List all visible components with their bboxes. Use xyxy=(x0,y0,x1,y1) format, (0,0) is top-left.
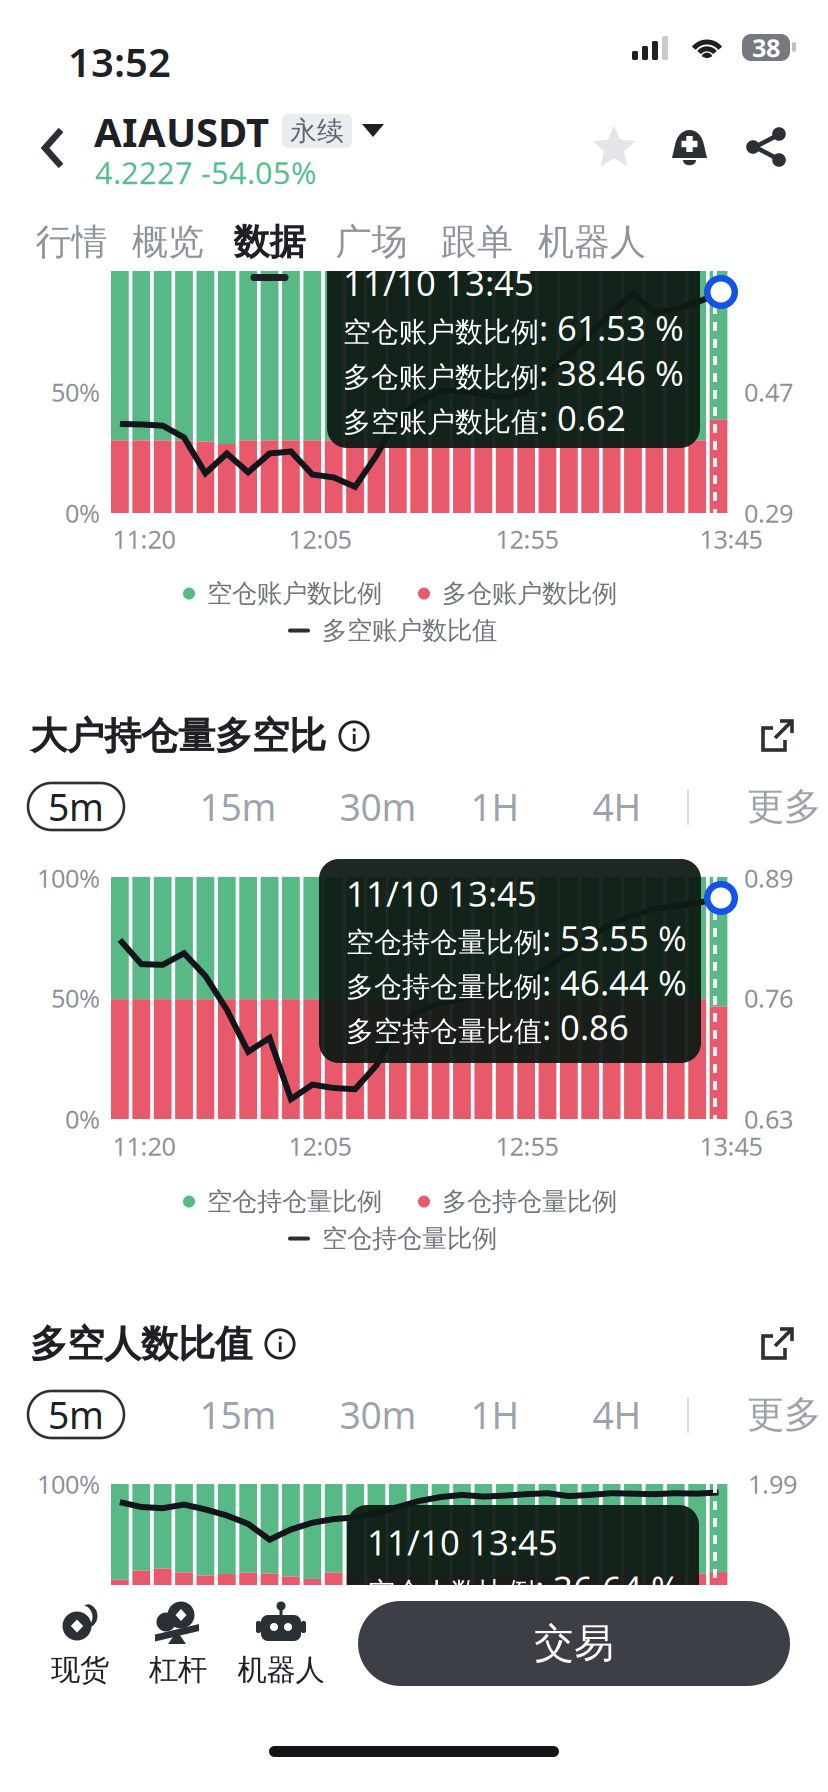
staticText: 15m xyxy=(199,1390,276,1439)
button[interactable]: Open full chart xyxy=(754,713,800,759)
staticText: 11/10 13:45 xyxy=(346,870,537,916)
button[interactable]: 5m xyxy=(28,1391,124,1438)
button[interactable]: 数据 xyxy=(218,209,321,275)
button[interactable]: 更多 xyxy=(740,783,828,830)
staticText: 现货 xyxy=(51,1652,109,1688)
staticText: 永续 xyxy=(290,115,344,147)
staticText: AIAUSDT xyxy=(94,105,269,158)
staticText: 机器人 xyxy=(237,1652,324,1688)
staticText: 12:55 xyxy=(495,522,558,556)
button[interactable]: 15m xyxy=(188,783,288,830)
staticText: 行情 xyxy=(35,220,107,264)
button[interactable]: 机器人 xyxy=(226,1600,336,1688)
staticText: 13:52 xyxy=(68,35,171,88)
button[interactable]: 4H xyxy=(578,783,656,830)
button[interactable]: Price alert xyxy=(667,124,713,170)
staticText: 0% xyxy=(65,1102,100,1136)
staticText: 机器人 xyxy=(538,220,646,264)
staticText: 1H xyxy=(470,782,519,831)
staticText: 0% xyxy=(65,496,100,530)
staticText: 1H xyxy=(470,1390,519,1439)
staticText: 多空人数比值 xyxy=(30,1321,252,1367)
staticText: 12:05 xyxy=(288,522,351,556)
button[interactable]: 广场 xyxy=(321,209,422,275)
staticText: 多仓账户数比例: 38.46 % xyxy=(343,349,684,395)
button[interactable]: 概览 xyxy=(118,209,218,275)
staticText: 5m xyxy=(48,1390,104,1439)
staticText: 38 xyxy=(752,31,780,64)
staticText: 11/10 13:45 xyxy=(367,1519,558,1565)
staticText: 跟单 xyxy=(441,220,513,264)
button[interactable]: Back xyxy=(26,113,80,183)
staticText: 4H xyxy=(592,1390,641,1439)
staticText: 交易 xyxy=(534,1619,614,1668)
button[interactable]: 30m xyxy=(328,1391,428,1438)
button[interactable]: 更多 xyxy=(740,1391,828,1438)
staticText: 多仓持仓量比例: 46.44 % xyxy=(346,959,687,1005)
button[interactable]: 行情 xyxy=(25,209,118,275)
staticText: 空仓账户数比例 xyxy=(207,578,382,609)
button[interactable]: 杠杆 xyxy=(131,1600,225,1688)
staticText: 4H xyxy=(592,782,641,831)
staticText: 空仓持仓量比例 xyxy=(322,1223,497,1254)
button[interactable]: 5m xyxy=(28,783,124,830)
button[interactable]: 30m xyxy=(328,783,428,830)
staticText: 广场 xyxy=(335,220,407,264)
staticText: 13:45 xyxy=(699,1129,762,1163)
staticText: 5m xyxy=(48,782,104,831)
staticText: 多空账户数比值: 0.62 xyxy=(343,394,626,440)
staticText: 50% xyxy=(51,375,100,409)
button[interactable]: Add to favorites xyxy=(591,124,637,170)
staticText: 30m xyxy=(339,1390,416,1439)
staticText: 空仓账户数比例: 61.53 % xyxy=(343,304,684,350)
button[interactable]: 1H xyxy=(456,1391,534,1438)
staticText: 数据 xyxy=(233,220,305,264)
staticText: 11:20 xyxy=(112,522,175,556)
staticText: 0.29 xyxy=(744,496,793,530)
staticText: 0.76 xyxy=(744,981,793,1015)
staticText: 15m xyxy=(199,782,276,831)
staticText: 大户持仓量多空比 xyxy=(30,713,326,759)
staticText: 多仓持仓量比例 xyxy=(442,1186,617,1217)
button[interactable]: Share xyxy=(744,124,790,170)
staticText: 50% xyxy=(51,981,100,1015)
staticText: 0.63 xyxy=(744,1102,793,1136)
staticText: 多空持仓量比值: 0.86 xyxy=(346,1004,629,1050)
staticText: 1.99 xyxy=(748,1467,797,1501)
staticText: 更多 xyxy=(747,784,821,829)
button[interactable]: Open full chart xyxy=(754,1321,800,1367)
staticText: 4.2227 -54.05% xyxy=(95,152,316,193)
button[interactable]: 跟单 xyxy=(422,209,532,275)
staticText: 0.89 xyxy=(744,861,793,895)
button[interactable]: 4H xyxy=(578,1391,656,1438)
staticText: 30m xyxy=(339,782,416,831)
button[interactable]: 交易 xyxy=(358,1601,790,1686)
staticText: 空仓持仓量比例: 53.55 % xyxy=(346,915,687,961)
staticText: 12:55 xyxy=(495,1129,558,1163)
button[interactable]: 1H xyxy=(456,783,534,830)
staticText: 0.47 xyxy=(744,375,793,409)
staticText: 空仓持仓量比例 xyxy=(207,1186,382,1217)
staticText: 多空账户数比值 xyxy=(322,615,497,646)
staticText: 概览 xyxy=(132,220,204,264)
staticText: 11:20 xyxy=(112,1129,175,1163)
staticText: 13:45 xyxy=(699,522,762,556)
staticText: 100% xyxy=(37,1467,100,1501)
button[interactable]: 现货 xyxy=(33,1600,127,1688)
staticText: 11/10 13:45 xyxy=(343,259,534,305)
staticText: 100% xyxy=(37,861,100,895)
staticText: 杠杆 xyxy=(149,1652,207,1688)
staticText: 空仓人数比例: 36.64 % xyxy=(367,1565,680,1611)
button[interactable]: 机器人 xyxy=(532,209,652,275)
staticText: 多仓账户数比例 xyxy=(442,578,617,609)
staticText: 12:05 xyxy=(288,1129,351,1163)
staticText: 更多 xyxy=(747,1392,821,1437)
button[interactable]: 15m xyxy=(188,1391,288,1438)
